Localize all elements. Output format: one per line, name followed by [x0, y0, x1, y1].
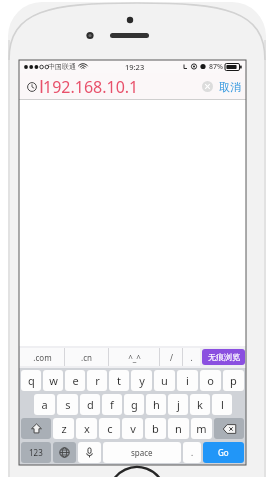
staticText: . — [190, 352, 193, 363]
button[interactable]: h — [146, 394, 166, 415]
button[interactable]: i — [177, 370, 198, 391]
staticText: b — [152, 421, 159, 436]
button[interactable]: n — [168, 418, 189, 439]
staticText: h — [153, 397, 160, 412]
button[interactable]: / — [160, 348, 182, 366]
staticText: 19:23 — [125, 62, 145, 72]
staticText: 192.168.10.1 — [43, 76, 139, 98]
button[interactable]: Backspace — [214, 418, 244, 439]
staticText: z — [61, 421, 67, 436]
button[interactable]: o — [200, 370, 221, 391]
staticText: 中国联通 — [48, 62, 76, 71]
button[interactable]: Go — [203, 442, 244, 463]
staticText: i — [186, 373, 189, 388]
staticText: e — [72, 373, 79, 388]
staticText: 取消 — [219, 80, 241, 94]
staticText: r — [95, 373, 100, 388]
button[interactable]: . — [183, 442, 201, 463]
staticText: g — [131, 397, 138, 412]
button[interactable]: History — [25, 80, 38, 93]
button[interactable]: 123 — [21, 442, 51, 463]
staticText: 无痕浏览 — [208, 352, 240, 362]
button[interactable]: Change keyboard — [53, 442, 76, 463]
button[interactable]: .cn — [65, 348, 108, 366]
staticText: 123 — [29, 447, 43, 458]
staticText: s — [65, 397, 71, 412]
button[interactable]: b — [145, 418, 166, 439]
staticText: . — [191, 447, 194, 458]
button[interactable]: Shift — [21, 418, 51, 439]
staticText: 87% — [209, 62, 223, 72]
staticText: .com — [33, 352, 52, 363]
button[interactable]: k — [190, 394, 210, 415]
button[interactable]: q — [21, 370, 41, 391]
staticText: a — [41, 397, 48, 412]
button[interactable]: s — [57, 394, 78, 415]
staticText: q — [28, 373, 35, 388]
staticText: w — [49, 373, 58, 388]
staticText: v — [130, 421, 136, 436]
staticText: d — [87, 397, 94, 412]
button[interactable]: z — [53, 418, 74, 439]
staticText: f — [110, 397, 114, 412]
button[interactable]: r — [87, 370, 107, 391]
button[interactable]: space — [103, 442, 181, 463]
staticText: l — [221, 397, 224, 412]
button[interactable]: v — [122, 418, 143, 439]
staticText: y — [139, 373, 145, 388]
button[interactable]: u — [154, 370, 175, 391]
button[interactable]: f — [102, 394, 122, 415]
button[interactable]: m — [191, 418, 212, 439]
button[interactable]: a — [34, 394, 55, 415]
button[interactable]: . — [183, 348, 200, 366]
button[interactable]: 取消 — [219, 80, 241, 94]
staticText: x — [84, 421, 90, 436]
staticText: u — [161, 373, 168, 388]
button[interactable]: l — [212, 394, 232, 415]
staticText: p — [230, 373, 237, 388]
button[interactable]: Dictation — [78, 442, 101, 463]
button[interactable]: ^_^ — [109, 348, 159, 366]
staticText: .cn — [81, 352, 92, 363]
button[interactable]: w — [43, 370, 63, 391]
button[interactable]: e — [65, 370, 85, 391]
staticText: k — [197, 397, 203, 412]
button[interactable]: p — [223, 370, 244, 391]
button[interactable]: t — [109, 370, 129, 391]
button[interactable]: .com — [20, 348, 64, 366]
staticText: space — [131, 447, 153, 458]
staticText: c — [107, 421, 113, 436]
button[interactable]: j — [168, 394, 188, 415]
button[interactable]: y — [131, 370, 152, 391]
staticText: ^_^ — [128, 352, 141, 363]
staticText: m — [196, 421, 207, 436]
staticText: t — [117, 373, 121, 388]
staticText: n — [175, 421, 182, 436]
staticText: Go — [218, 447, 229, 458]
staticText: / — [170, 352, 173, 363]
button[interactable]: Clear text — [202, 81, 213, 92]
staticText: j — [177, 397, 180, 412]
button[interactable]: 无痕浏览 — [202, 349, 245, 365]
button[interactable]: d — [80, 394, 100, 415]
button[interactable]: g — [124, 394, 144, 415]
button[interactable]: c — [99, 418, 120, 439]
button[interactable]: x — [76, 418, 97, 439]
staticText: o — [207, 373, 214, 388]
